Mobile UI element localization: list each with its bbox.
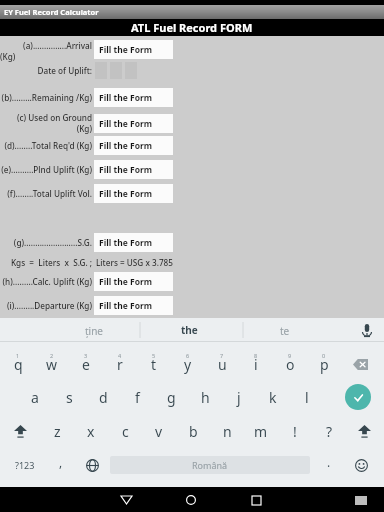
button[interactable]: 6 bbox=[171, 350, 205, 378]
button[interactable]: 0 bbox=[307, 350, 341, 378]
button[interactable]: m bbox=[244, 417, 278, 445]
button[interactable]: Voice input bbox=[357, 320, 377, 340]
staticText: Kgs = Liters x S.G. ; bbox=[0, 257, 92, 268]
button[interactable]: Fill the Form bbox=[94, 40, 173, 59]
button[interactable]: 8 bbox=[239, 350, 273, 378]
button[interactable]: z bbox=[40, 417, 74, 445]
button[interactable]: 9 bbox=[273, 350, 307, 378]
staticText: EY Fuel Record Calculator bbox=[4, 7, 99, 17]
staticText: 2 bbox=[50, 352, 54, 359]
staticText: p bbox=[320, 355, 329, 374]
staticText: Fill the Form bbox=[99, 237, 153, 249]
staticText: z bbox=[54, 422, 61, 441]
staticText: (a)...............Arrival bbox=[0, 40, 92, 51]
button[interactable]: ?123 bbox=[5, 452, 45, 478]
staticText: ? bbox=[326, 422, 333, 441]
staticText: 9 bbox=[288, 352, 292, 359]
button[interactable]: Change language bbox=[79, 452, 105, 478]
button[interactable]: 1 bbox=[1, 350, 35, 378]
button[interactable]: 4 bbox=[103, 350, 137, 378]
staticText: d bbox=[99, 388, 108, 407]
staticText: Fill the Form bbox=[99, 140, 153, 152]
button[interactable]: ? bbox=[312, 417, 346, 445]
button[interactable]: g bbox=[154, 383, 188, 411]
staticText: b bbox=[189, 422, 198, 441]
staticText: ATL Fuel Record FORM bbox=[131, 20, 253, 35]
staticText: Română bbox=[192, 459, 228, 471]
button[interactable]: ! bbox=[278, 417, 312, 445]
button[interactable]: the bbox=[181, 323, 198, 337]
button[interactable]: 7 bbox=[205, 350, 239, 378]
staticText: , bbox=[59, 454, 63, 470]
staticText: Fill the Form bbox=[99, 92, 153, 104]
staticText: Fill the Form bbox=[99, 188, 153, 200]
staticText: 6 bbox=[186, 352, 190, 359]
button[interactable]: Enter bbox=[345, 384, 371, 410]
staticText: ! bbox=[293, 422, 297, 441]
button[interactable]: Fill the Form bbox=[94, 296, 173, 315]
staticText: Fill the Form bbox=[99, 118, 153, 130]
staticText: h bbox=[201, 388, 210, 407]
button[interactable]: l bbox=[290, 383, 324, 411]
button[interactable]: , bbox=[48, 452, 74, 478]
button[interactable]: Backspace bbox=[345, 352, 375, 376]
staticText: u bbox=[218, 355, 227, 374]
button[interactable]: h bbox=[188, 383, 222, 411]
staticText: 8 bbox=[254, 352, 258, 359]
staticText: j bbox=[237, 388, 241, 407]
button[interactable]: Fill the Form bbox=[94, 88, 173, 107]
button[interactable]: j bbox=[222, 383, 256, 411]
staticText: . bbox=[327, 454, 331, 470]
button[interactable]: Hide keyboard bbox=[350, 492, 372, 508]
button[interactable]: te bbox=[280, 324, 290, 338]
staticText: s bbox=[66, 388, 73, 407]
staticText: e bbox=[82, 355, 90, 374]
button[interactable]: 3 bbox=[69, 350, 103, 378]
button[interactable]: Shift bbox=[349, 418, 379, 444]
button[interactable]: c bbox=[108, 417, 142, 445]
staticText: (d)........Total Req'd (Kg) bbox=[0, 140, 92, 151]
button[interactable]: n bbox=[210, 417, 244, 445]
button[interactable]: 5 bbox=[137, 350, 171, 378]
staticText: q bbox=[14, 355, 23, 374]
button[interactable]: d bbox=[86, 383, 120, 411]
button[interactable]: ține bbox=[85, 324, 104, 338]
staticText: Date of Uplift: bbox=[0, 65, 92, 76]
button[interactable]: s bbox=[52, 383, 86, 411]
button[interactable]: Back bbox=[113, 492, 139, 508]
staticText: o bbox=[286, 355, 295, 374]
button[interactable]: v bbox=[142, 417, 176, 445]
button[interactable]: Home bbox=[178, 491, 204, 509]
button[interactable]: x bbox=[74, 417, 108, 445]
button[interactable]: 2 bbox=[35, 350, 69, 378]
button[interactable]: k bbox=[256, 383, 290, 411]
button[interactable]: Română bbox=[110, 456, 310, 474]
staticText: ?123 bbox=[15, 459, 35, 471]
staticText: a bbox=[31, 388, 39, 407]
button[interactable]: f bbox=[120, 383, 154, 411]
staticText: t bbox=[151, 355, 157, 374]
button[interactable]: Fill the Form bbox=[94, 160, 173, 179]
button[interactable]: b bbox=[176, 417, 210, 445]
button[interactable]: Fill the Form bbox=[94, 272, 173, 291]
button[interactable]: Fill the Form bbox=[94, 184, 173, 203]
button[interactable]: Shift bbox=[5, 418, 35, 444]
staticText: w bbox=[46, 355, 58, 374]
staticText: m bbox=[254, 422, 268, 441]
button[interactable]: Fill the Form bbox=[94, 233, 173, 252]
staticText: Fill the Form bbox=[99, 164, 153, 176]
button[interactable]: Emoji bbox=[348, 452, 374, 478]
button[interactable]: Fill the Form bbox=[94, 114, 173, 133]
staticText: k bbox=[269, 388, 277, 407]
staticText: (h).........Calc. Uplift (Kg) bbox=[0, 276, 92, 287]
button[interactable]: . bbox=[316, 452, 342, 478]
staticText: c bbox=[122, 422, 129, 441]
button[interactable]: a bbox=[18, 383, 52, 411]
button[interactable]: Recent apps bbox=[243, 491, 269, 509]
button[interactable]: Fill the Form bbox=[94, 136, 173, 155]
staticText: i bbox=[254, 355, 258, 374]
staticText: 4 bbox=[118, 352, 122, 359]
